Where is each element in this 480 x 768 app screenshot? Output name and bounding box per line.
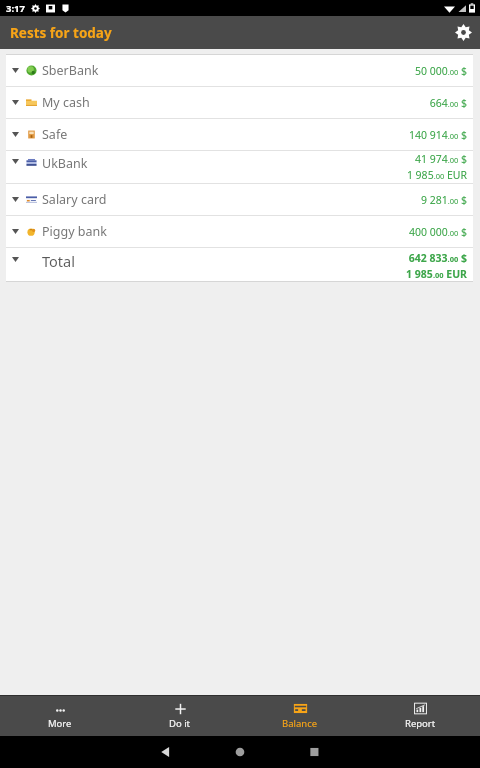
staticText: SberBank: [42, 62, 99, 79]
button[interactable]: Safe: [6, 119, 473, 150]
button[interactable]: Salary card: [6, 184, 473, 215]
staticText: Salary card: [42, 191, 107, 208]
button[interactable]: My cash: [6, 87, 473, 118]
staticText: More: [48, 717, 72, 730]
staticText: 9 281.00 $: [420, 193, 467, 207]
staticText: 400 000.00 $: [408, 225, 467, 239]
button[interactable]: Report: [360, 696, 480, 736]
button[interactable]: Balance: [240, 696, 360, 736]
staticText: 50 000.00 $: [414, 64, 467, 78]
staticText: Piggy bank: [42, 223, 107, 240]
staticText: 1 985.00 EUR: [406, 168, 467, 182]
button[interactable]: Do it: [120, 696, 240, 736]
staticText: Safe: [42, 126, 68, 143]
staticText: 140 914.00 $: [408, 128, 467, 142]
button[interactable]: More: [0, 696, 120, 736]
staticText: 1 985.00 EUR: [406, 267, 467, 281]
staticText: 664.00 $: [429, 96, 467, 110]
staticText: 3:17: [6, 2, 25, 15]
staticText: Rests for today: [10, 24, 112, 42]
staticText: 642 833.00 $: [408, 251, 467, 265]
staticText: Total: [42, 251, 75, 271]
button[interactable]: SberBank: [6, 55, 473, 86]
staticText: My cash: [42, 94, 90, 111]
staticText: Balance: [282, 717, 318, 730]
staticText: UkBank: [42, 155, 88, 172]
staticText: 41 974.00 $: [414, 152, 467, 166]
button[interactable]: Total: [6, 248, 473, 281]
button[interactable]: Piggy bank: [6, 216, 473, 247]
staticText: Report: [405, 717, 436, 730]
staticText: Do it: [169, 717, 191, 730]
button[interactable]: UkBank: [6, 151, 473, 183]
button[interactable]: Settings: [447, 16, 480, 49]
